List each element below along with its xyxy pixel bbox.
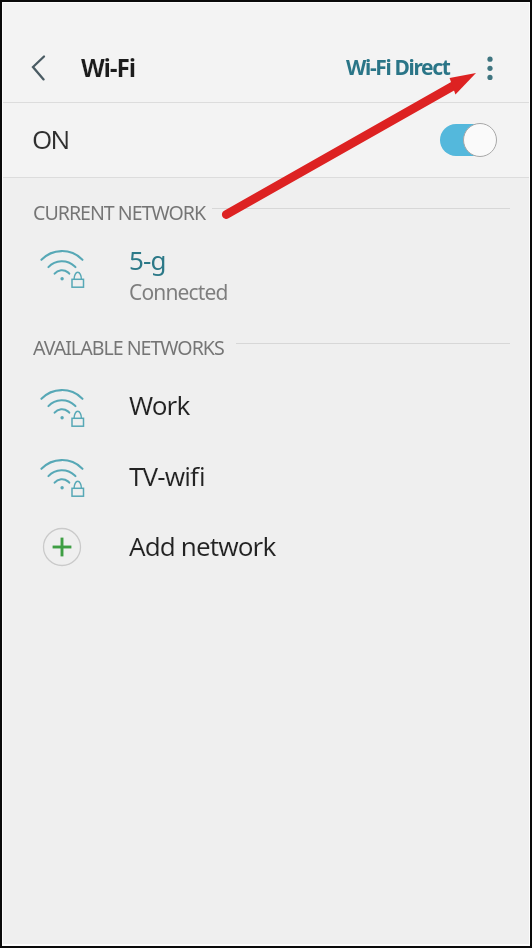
- staticText: Wi-Fi Direct: [346, 53, 450, 82]
- button[interactable]: Wi-Fi Direct: [338, 33, 468, 103]
- staticText: Work: [129, 387, 190, 422]
- button[interactable]: Add network: [3, 514, 529, 584]
- staticText: TV-wifi: [129, 458, 205, 493]
- button[interactable]: 5-g: [3, 235, 529, 305]
- staticText: AVAILABLE NETWORKS: [33, 334, 224, 361]
- button[interactable]: TV-wifi: [3, 444, 529, 514]
- button[interactable]: Navigate up: [18, 48, 60, 90]
- staticText: Wi-Fi: [81, 51, 135, 85]
- staticText: CURRENT NETWORK: [33, 199, 206, 226]
- button[interactable]: More options: [469, 47, 511, 89]
- staticText: Connected: [129, 278, 228, 307]
- staticText: Add network: [129, 528, 276, 563]
- staticText: 5-g: [129, 242, 166, 277]
- button[interactable]: Work: [3, 374, 529, 444]
- button[interactable]: ON: [3, 103, 529, 177]
- staticText: ON: [32, 121, 69, 156]
